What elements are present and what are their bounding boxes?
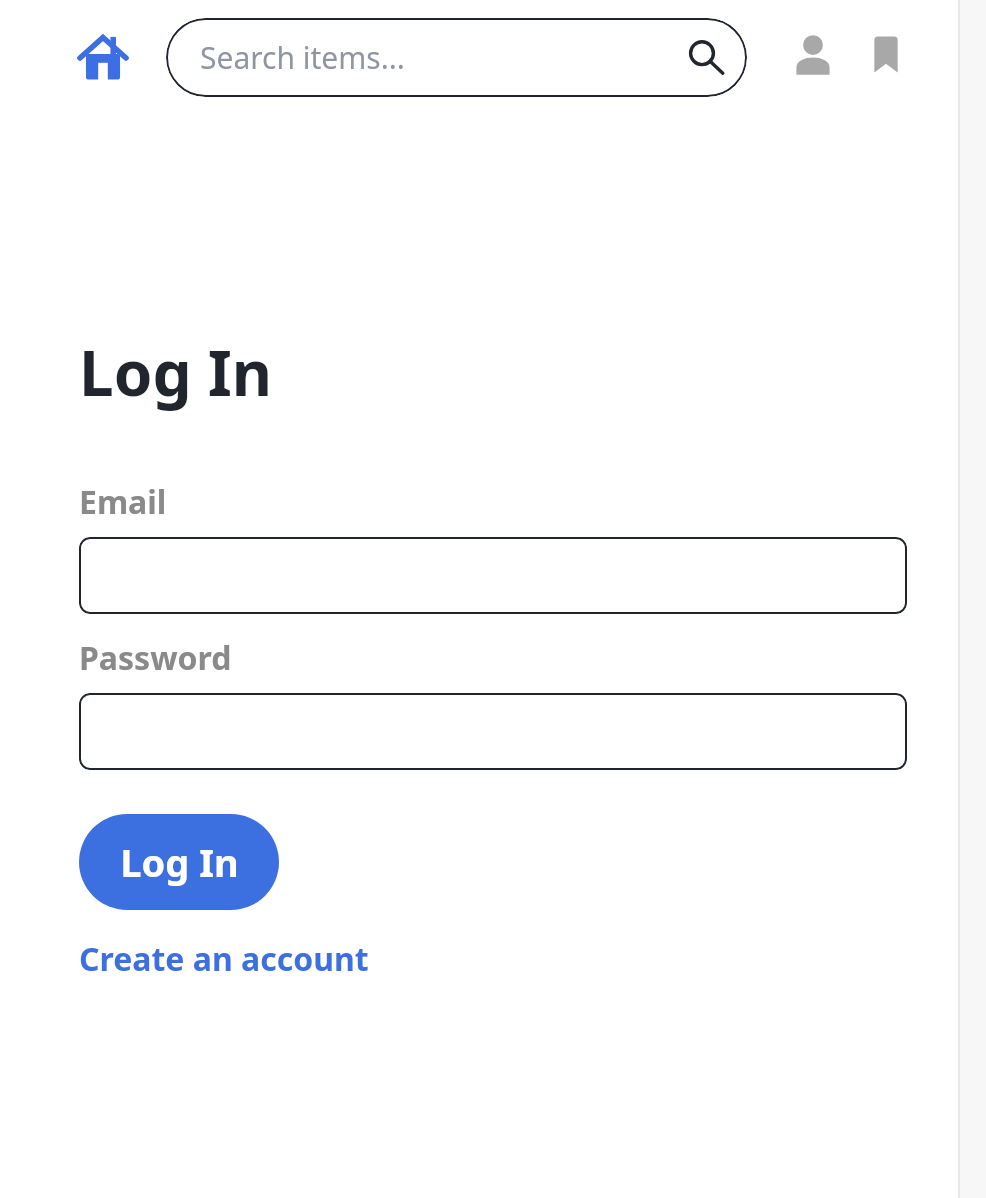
button[interactable]: Saved items bbox=[858, 26, 914, 82]
button[interactable]: Account bbox=[784, 26, 842, 84]
staticText: Log In bbox=[79, 330, 273, 414]
button[interactable]: Search bbox=[683, 35, 729, 81]
button[interactable]: Log In bbox=[79, 814, 279, 910]
staticText: Log In bbox=[120, 836, 239, 888]
staticText: Create an account bbox=[79, 937, 369, 981]
button[interactable]: Search items... bbox=[166, 18, 747, 97]
button[interactable]: Email input field bbox=[79, 537, 907, 614]
button[interactable]: Create an account bbox=[79, 937, 369, 981]
button[interactable]: Home bbox=[75, 30, 131, 86]
staticText: Email bbox=[79, 480, 167, 524]
staticText: Search items... bbox=[200, 37, 405, 78]
staticText: Password bbox=[79, 636, 232, 680]
button[interactable]: Password input field bbox=[79, 693, 907, 770]
